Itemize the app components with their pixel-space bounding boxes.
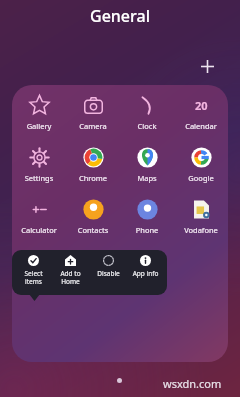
button[interactable]: Maps <box>120 146 174 183</box>
button[interactable]: App info <box>127 255 164 278</box>
button[interactable]: Clock <box>120 94 174 131</box>
button[interactable]: Settings <box>12 146 66 183</box>
staticText: Phone <box>120 225 174 235</box>
button[interactable]: Add <box>196 55 218 77</box>
staticText: Maps <box>120 173 174 183</box>
button[interactable]: Disable <box>90 255 127 278</box>
button[interactable]: Chrome <box>66 146 120 183</box>
button[interactable]: Select items <box>15 255 52 286</box>
button[interactable]: Add to Home <box>52 255 89 286</box>
staticText: Game Launcher <box>12 277 66 296</box>
staticText: 20 <box>195 98 208 113</box>
button[interactable]: 20 <box>174 94 228 131</box>
staticText: Disable <box>90 269 127 278</box>
button[interactable]: Game Launcher <box>12 250 66 296</box>
button[interactable]: Camera <box>66 94 120 131</box>
button[interactable]: Google <box>174 146 228 183</box>
staticText: Calculator <box>12 225 66 235</box>
staticText: General <box>90 5 150 27</box>
staticText: wsxdn.com <box>163 376 222 391</box>
staticText: Clock <box>120 121 174 131</box>
button[interactable]: Calculator <box>12 198 66 235</box>
staticText: App info <box>127 269 164 278</box>
staticText: Select items <box>15 269 52 286</box>
staticText: Chrome <box>66 173 120 183</box>
staticText: Gallery <box>12 121 66 131</box>
button[interactable]: Contacts <box>66 198 120 235</box>
staticText: Settings <box>12 173 66 183</box>
staticText: Vodafone <box>174 225 228 235</box>
staticText: Camera <box>66 121 120 131</box>
button[interactable]: Phone <box>120 198 174 235</box>
staticText: Add to Home <box>52 269 89 286</box>
button[interactable]: Gallery <box>12 94 66 131</box>
staticText: Calendar <box>174 121 228 131</box>
staticText: Google <box>174 173 228 183</box>
staticText: Contacts <box>66 225 120 235</box>
button[interactable]: Vodafone <box>174 198 228 235</box>
